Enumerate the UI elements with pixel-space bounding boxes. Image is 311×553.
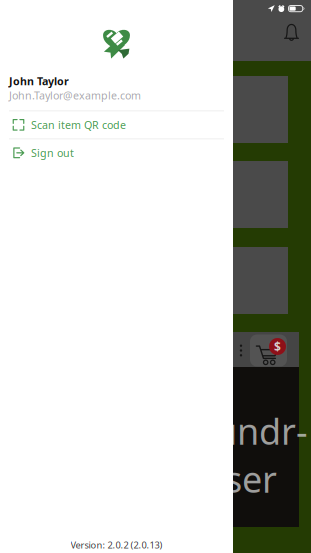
button[interactable]: Scan item QR code <box>0 111 233 138</box>
staticText: Scan item QR code <box>31 118 126 132</box>
staticText: John.Taylor@example.com <box>9 88 141 102</box>
button[interactable]: Cart <box>250 334 287 366</box>
staticText: Version: 2.0.2 (2.0.13) <box>70 539 162 551</box>
button[interactable]: Sign out <box>0 139 233 166</box>
staticText: John Taylor <box>9 74 69 88</box>
staticText: Fundraiser <box>196 407 308 503</box>
staticText: $ <box>274 338 281 354</box>
staticText: Sign out <box>31 146 74 160</box>
button[interactable]: Notifications <box>279 18 304 46</box>
